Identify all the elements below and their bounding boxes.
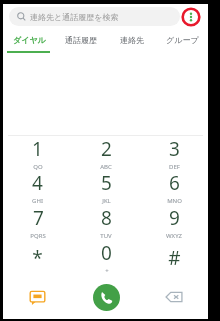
staticText: DEF: [169, 163, 180, 170]
staticText: 5: [101, 170, 112, 196]
staticText: 3: [169, 136, 180, 162]
button[interactable]: Call: [72, 275, 140, 319]
staticText: 7: [33, 205, 44, 231]
staticText: JKL: [102, 197, 111, 205]
button[interactable]: 連絡先と通話履歴を検索: [9, 7, 180, 26]
button[interactable]: 0: [72, 240, 140, 275]
button[interactable]: 4: [3, 170, 72, 205]
button[interactable]: More options: [180, 7, 202, 26]
staticText: 連絡先: [120, 35, 144, 45]
button[interactable]: 1: [3, 136, 72, 170]
staticText: QO: [33, 163, 43, 170]
staticText: #: [168, 245, 181, 271]
button[interactable]: Send SMS: [3, 275, 72, 319]
staticText: TUV: [100, 232, 112, 240]
staticText: MNO: [167, 197, 182, 205]
staticText: WXYZ: [166, 232, 182, 240]
button[interactable]: 9: [140, 205, 208, 240]
button[interactable]: 7: [3, 205, 72, 240]
button[interactable]: 2: [72, 136, 140, 170]
staticText: 8: [101, 205, 112, 231]
staticText: 通話履歴: [65, 35, 97, 45]
staticText: +: [105, 267, 109, 275]
staticText: 連絡先と通話履歴を検索: [30, 12, 119, 22]
button[interactable]: #: [140, 240, 208, 275]
staticText: 4: [32, 170, 43, 196]
staticText: PQRS: [30, 232, 46, 240]
staticText: 9: [169, 205, 180, 231]
button[interactable]: 3: [140, 136, 208, 170]
button[interactable]: 6: [140, 170, 208, 205]
staticText: ダイヤル: [13, 35, 46, 45]
button[interactable]: グループ: [157, 29, 208, 51]
staticText: 2: [101, 136, 112, 162]
staticText: グループ: [166, 35, 199, 45]
staticText: *: [32, 245, 43, 271]
button[interactable]: 5: [72, 170, 140, 205]
button[interactable]: 連絡先: [106, 29, 157, 51]
staticText: ABC: [100, 163, 112, 170]
button[interactable]: 8: [72, 205, 140, 240]
staticText: 1: [32, 136, 43, 162]
staticText: 0: [101, 240, 112, 266]
button[interactable]: ダイヤル: [3, 29, 55, 51]
button[interactable]: *: [3, 240, 72, 275]
button[interactable]: Backspace: [140, 275, 208, 319]
button[interactable]: 通話履歴: [55, 29, 106, 51]
staticText: 6: [169, 170, 180, 196]
staticText: GHI: [32, 197, 43, 205]
